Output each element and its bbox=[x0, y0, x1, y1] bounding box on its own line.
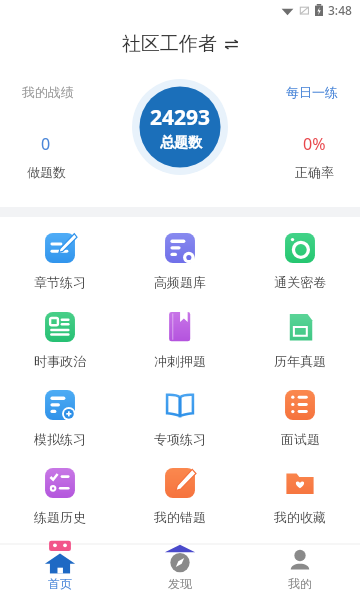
staticText: 3:48 bbox=[328, 2, 352, 18]
button[interactable]: 历年真题 bbox=[240, 310, 360, 388]
staticText: 每日一练 bbox=[286, 84, 338, 100]
staticText: 0 bbox=[41, 133, 51, 155]
button[interactable]: 练题历史 bbox=[0, 466, 120, 544]
button[interactable]: 首页 bbox=[0, 544, 120, 600]
staticText: 时事政治 bbox=[34, 353, 86, 369]
other: Switch category bbox=[224, 37, 239, 52]
staticText: 我的错题 bbox=[154, 509, 206, 525]
button[interactable]: 我的收藏 bbox=[240, 466, 360, 544]
staticText: 通关密卷 bbox=[274, 274, 326, 290]
button[interactable]: 每日一练 bbox=[286, 84, 338, 100]
staticText: 练题历史 bbox=[34, 509, 86, 525]
staticText: 正确率 bbox=[295, 164, 334, 180]
staticText: 我的战绩 bbox=[22, 84, 74, 100]
button[interactable]: 章节练习 bbox=[0, 231, 120, 310]
button[interactable]: 模拟练习 bbox=[0, 388, 120, 466]
button[interactable]: 我的错题 bbox=[120, 466, 240, 544]
button[interactable]: 24293 bbox=[132, 79, 228, 175]
staticText: 0% bbox=[303, 133, 326, 155]
staticText: 面试题 bbox=[281, 431, 320, 447]
staticText: 高频题库 bbox=[154, 274, 206, 290]
button[interactable]: 我的 bbox=[240, 544, 360, 600]
staticText: 冲刺押题 bbox=[154, 353, 206, 369]
button[interactable]: 面试题 bbox=[240, 388, 360, 466]
staticText: 总题数 bbox=[160, 134, 202, 152]
button[interactable]: 社区工作者 bbox=[122, 32, 239, 56]
button[interactable]: 0 bbox=[22, 133, 70, 180]
staticText: 首页 bbox=[48, 576, 72, 591]
staticText: 做题数 bbox=[27, 164, 66, 180]
button[interactable]: 发现 bbox=[120, 544, 240, 600]
button[interactable]: 专项练习 bbox=[120, 388, 240, 466]
button[interactable]: 冲刺押题 bbox=[120, 310, 240, 388]
staticText: 24293 bbox=[150, 103, 211, 132]
button[interactable]: 高频题库 bbox=[120, 231, 240, 310]
staticText: 章节练习 bbox=[34, 274, 86, 290]
button[interactable]: 时事政治 bbox=[0, 310, 120, 388]
staticText: 社区工作者 bbox=[122, 32, 217, 56]
staticText: 历年真题 bbox=[274, 353, 326, 369]
staticText: 我的 bbox=[288, 576, 312, 591]
staticText: 模拟练习 bbox=[34, 431, 86, 447]
staticText: 专项练习 bbox=[154, 431, 206, 447]
button[interactable]: 通关密卷 bbox=[240, 231, 360, 310]
staticText: 我的收藏 bbox=[274, 509, 326, 525]
staticText: 发现 bbox=[168, 576, 192, 591]
